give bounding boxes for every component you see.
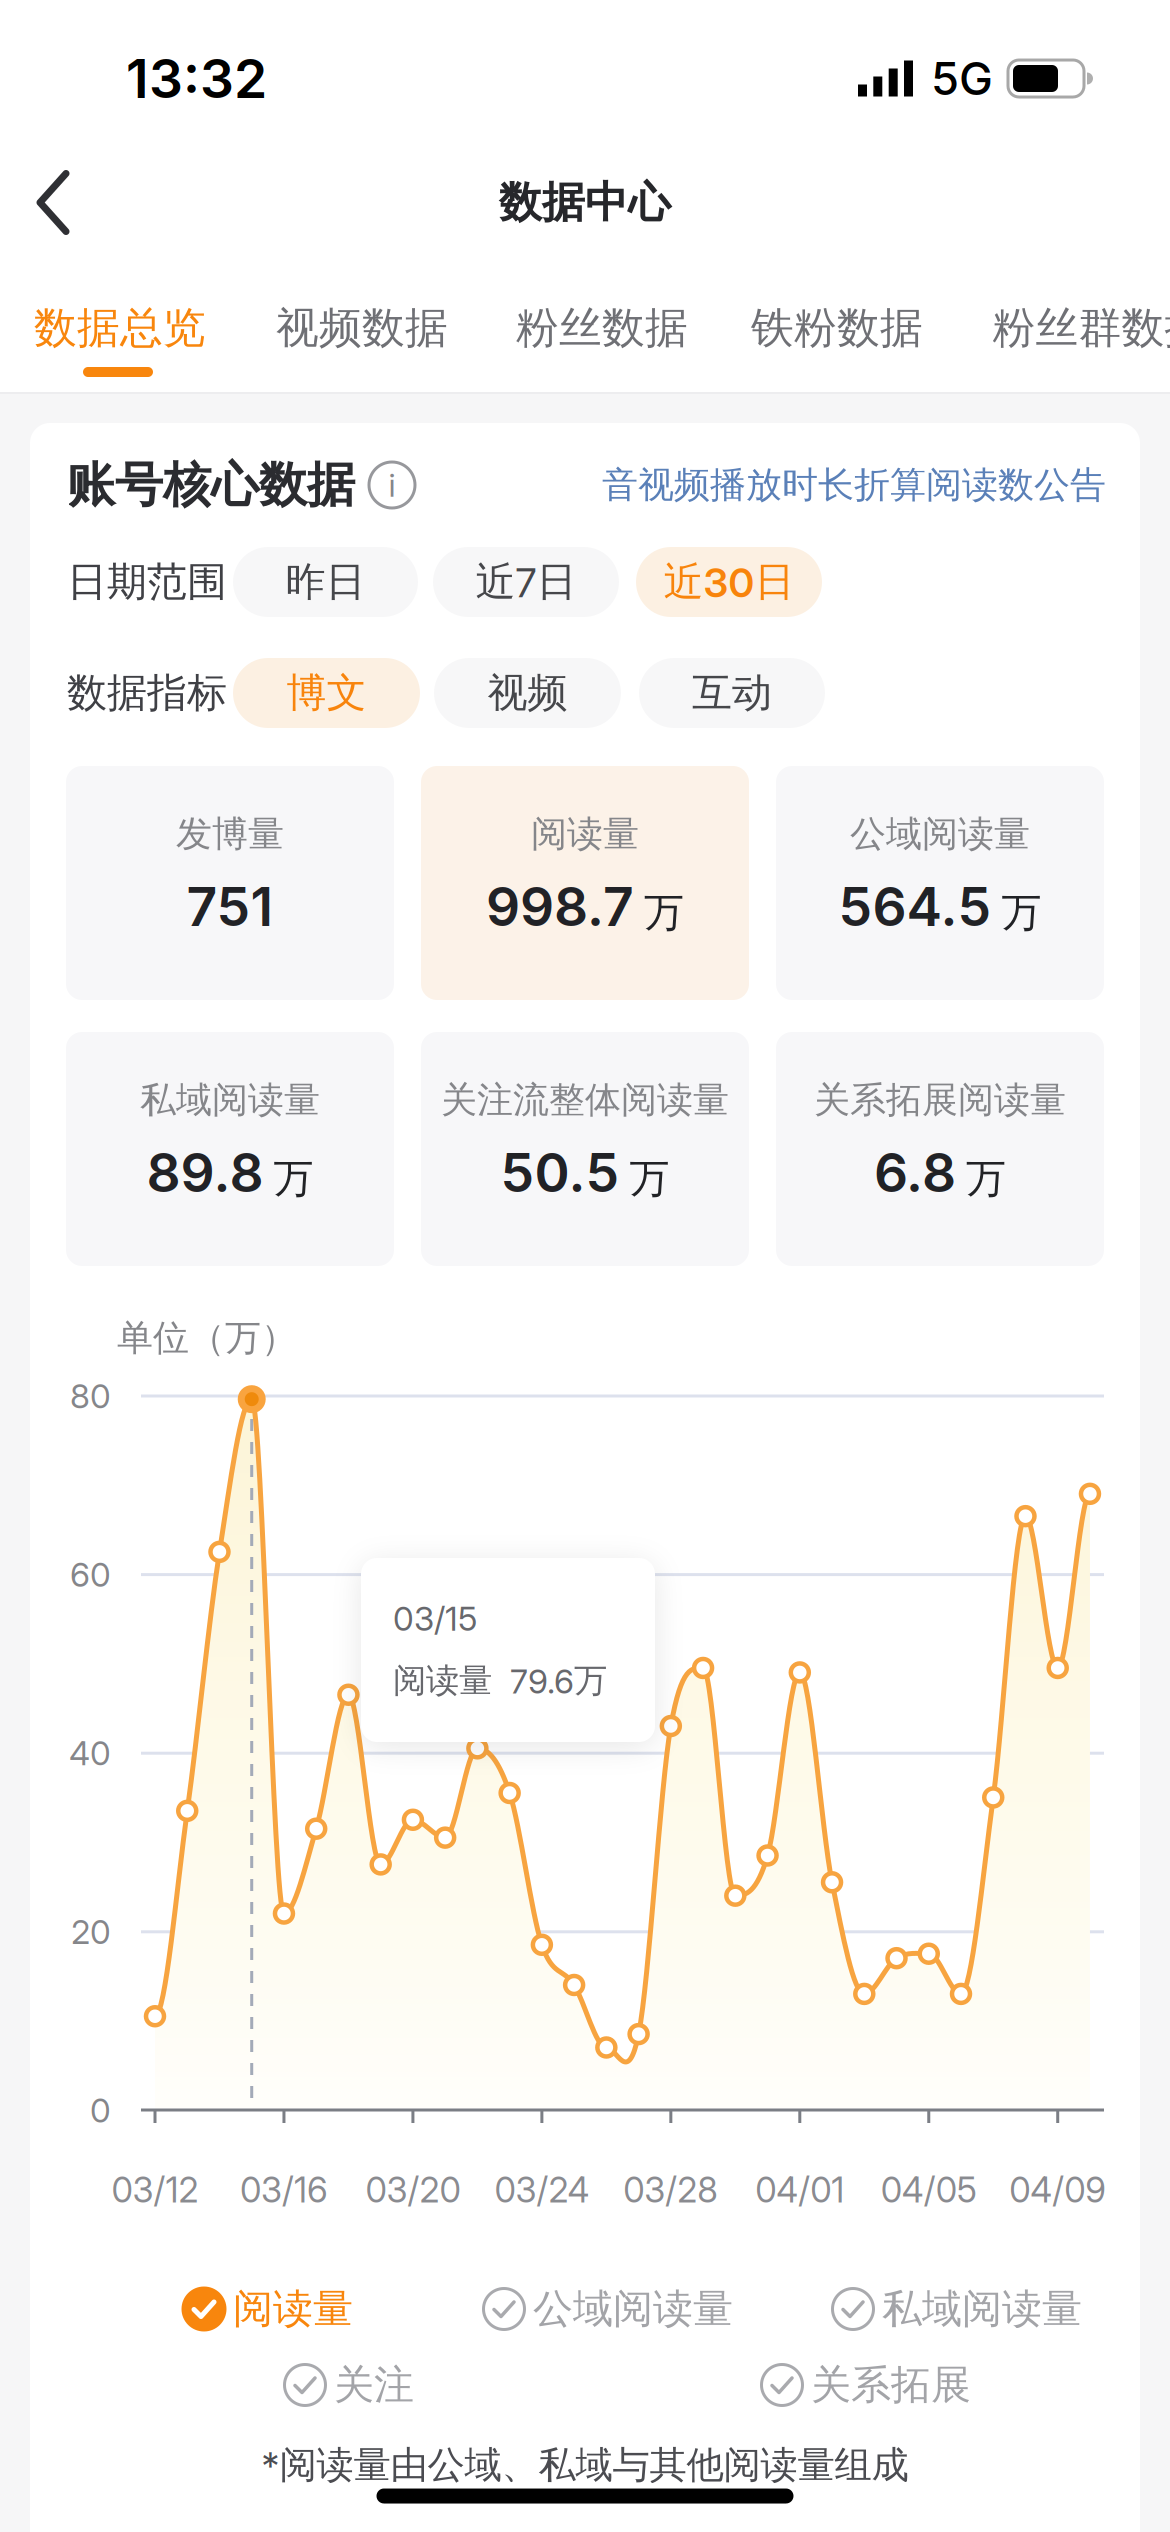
staticText: 万 xyxy=(966,1154,1006,1203)
staticText: 04/01 xyxy=(755,2170,844,2210)
button[interactable]: 近7日 xyxy=(433,547,619,617)
staticText: 视频 xyxy=(487,668,567,717)
button[interactable]: 音视频播放时长折算阅读数公告 xyxy=(602,463,1106,507)
staticText: 6.8 xyxy=(874,1141,956,1204)
button[interactable]: 发博量 xyxy=(66,766,394,1000)
button[interactable]: 博文 xyxy=(233,658,420,728)
staticText: 博文 xyxy=(286,668,366,717)
staticText: 998.7 xyxy=(486,875,634,938)
staticText: 关系拓展阅读量 xyxy=(814,1078,1066,1122)
staticText: 40 xyxy=(69,1733,111,1773)
staticText: 音视频播放时长折算阅读数公告 xyxy=(602,463,1106,507)
button[interactable] xyxy=(0,169,100,235)
button[interactable]: 关系拓展 xyxy=(759,2360,971,2409)
staticText: 751 xyxy=(186,875,273,938)
button[interactable]: 视频数据 xyxy=(276,302,448,354)
button[interactable]: 阅读量 xyxy=(421,766,749,1000)
button[interactable]: 互动 xyxy=(639,658,825,728)
staticText: 阅读量 79.6万 xyxy=(393,1660,607,1701)
staticText: 60 xyxy=(70,1555,111,1594)
button[interactable]: 关注流整体阅读量 xyxy=(421,1032,749,1266)
staticText: 03/12 xyxy=(111,2170,198,2210)
staticText: 私域阅读量 xyxy=(882,2284,1082,2333)
button[interactable]: 粉丝群数据 xyxy=(992,302,1170,354)
staticText: 近30日 xyxy=(663,557,794,606)
staticText: 04/09 xyxy=(1009,2170,1106,2210)
staticText: 粉丝群数据 xyxy=(992,302,1170,354)
staticText: 关系拓展 xyxy=(811,2360,971,2409)
staticText: 万 xyxy=(644,888,684,937)
staticText: 数据中心 xyxy=(499,176,671,229)
staticText: 视频数据 xyxy=(276,302,448,354)
staticText: 564.5 xyxy=(838,875,991,938)
staticText: 03/15 xyxy=(393,1599,477,1638)
button[interactable]: 关注 xyxy=(282,2360,414,2409)
staticText: 粉丝数据 xyxy=(516,302,688,354)
staticText: 50.5 xyxy=(500,1141,619,1204)
button[interactable]: 关系拓展阅读量 xyxy=(776,1032,1104,1266)
staticText: *阅读量由公域、私域与其他阅读量组成 xyxy=(261,2442,908,2488)
staticText: 数据指标 xyxy=(67,668,227,717)
staticText: 80 xyxy=(70,1376,111,1416)
staticText: 日期范围 xyxy=(67,557,227,606)
staticText: 5G xyxy=(931,52,993,105)
staticText: 昨日 xyxy=(285,557,365,606)
staticText: 数据总览 xyxy=(34,302,206,354)
staticText: 万 xyxy=(629,1154,669,1203)
button[interactable]: 粉丝数据 xyxy=(516,302,688,354)
staticText: 03/16 xyxy=(240,2170,328,2210)
staticText: 账号核心数据 xyxy=(67,455,355,514)
staticText: 关注流整体阅读量 xyxy=(441,1078,729,1122)
button[interactable]: 数据总览 xyxy=(34,302,206,354)
staticText: 20 xyxy=(71,1912,111,1951)
staticText: 03/24 xyxy=(494,2170,589,2210)
staticText: 单位（万） xyxy=(117,1316,297,1360)
button[interactable]: 视频 xyxy=(434,658,621,728)
staticText: 私域阅读量 xyxy=(140,1078,320,1122)
button[interactable]: 公域阅读量 xyxy=(481,2284,733,2333)
staticText: 互动 xyxy=(692,668,772,717)
staticText: 阅读量 xyxy=(531,812,639,856)
staticText: 89.8 xyxy=(146,1141,263,1204)
button[interactable]: 昨日 xyxy=(233,547,418,617)
button[interactable]: 私域阅读量 xyxy=(830,2284,1082,2333)
staticText: 公域阅读量 xyxy=(850,812,1030,856)
staticText: 发博量 xyxy=(176,812,284,856)
staticText: 03/28 xyxy=(623,2170,718,2210)
button[interactable]: 铁粉数据 xyxy=(751,302,923,354)
button[interactable]: 私域阅读量 xyxy=(66,1032,394,1266)
staticText: 阅读量 xyxy=(233,2284,353,2333)
staticText: 公域阅读量 xyxy=(533,2284,733,2333)
staticText: 04/05 xyxy=(881,2170,977,2210)
staticText: 关注 xyxy=(334,2360,414,2409)
staticText: 0 xyxy=(90,2091,111,2130)
staticText: i xyxy=(388,466,395,504)
button[interactable]: i xyxy=(355,462,415,508)
button[interactable]: 公域阅读量 xyxy=(776,766,1104,1000)
button[interactable]: 阅读量 xyxy=(181,2284,353,2333)
staticText: 03/20 xyxy=(365,2170,460,2210)
staticText: 铁粉数据 xyxy=(751,302,923,354)
button[interactable]: 近30日 xyxy=(636,547,822,617)
staticText: 近7日 xyxy=(475,557,576,606)
staticText: 万 xyxy=(273,1154,313,1203)
staticText: 13:32 xyxy=(126,47,267,110)
staticText: 万 xyxy=(1001,888,1041,937)
